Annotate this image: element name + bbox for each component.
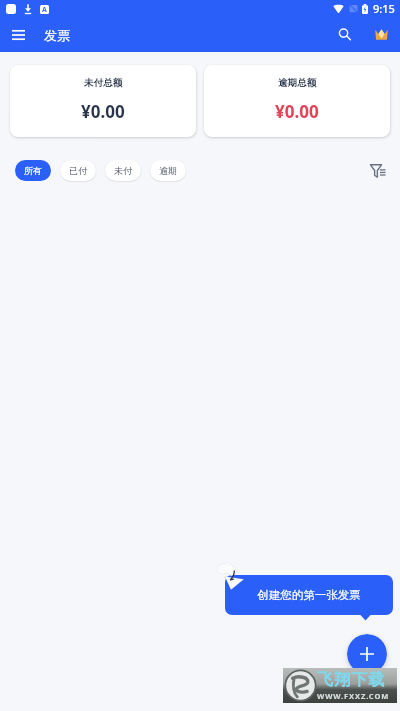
staticText: 飞翔下载 [317,670,386,690]
button[interactable]: Menu [0,17,37,52]
staticText: 创建您的第一张发票 [257,588,361,602]
staticText: ¥0.00 [81,100,125,123]
staticText: 所有 [24,165,42,176]
button[interactable]: 未付总额 [10,65,196,137]
button[interactable]: Premium [363,17,400,52]
staticText: WWW.FXXZ.COM [317,691,390,701]
staticText: 发票 [44,27,70,43]
button[interactable]: Add invoice [347,634,387,674]
staticText: ¥0.00 [275,100,319,123]
staticText: 逾期总额 [278,77,316,89]
button[interactable]: 逾期 [150,160,186,181]
staticText: 9:15 [373,1,395,16]
button[interactable]: Filter [365,157,391,183]
button[interactable]: 未付 [105,160,141,181]
staticText: 未付 [114,165,132,176]
button[interactable]: Search [327,17,363,52]
button[interactable]: 创建您的第一张发票 [225,575,393,615]
button[interactable]: 已付 [60,160,96,181]
staticText: 逾期 [159,165,177,176]
staticText: 已付 [69,165,87,176]
staticText: 未付总额 [84,77,122,89]
button[interactable]: 所有 [15,160,51,181]
staticText: A [42,5,47,14]
button[interactable]: 逾期总额 [204,65,390,137]
